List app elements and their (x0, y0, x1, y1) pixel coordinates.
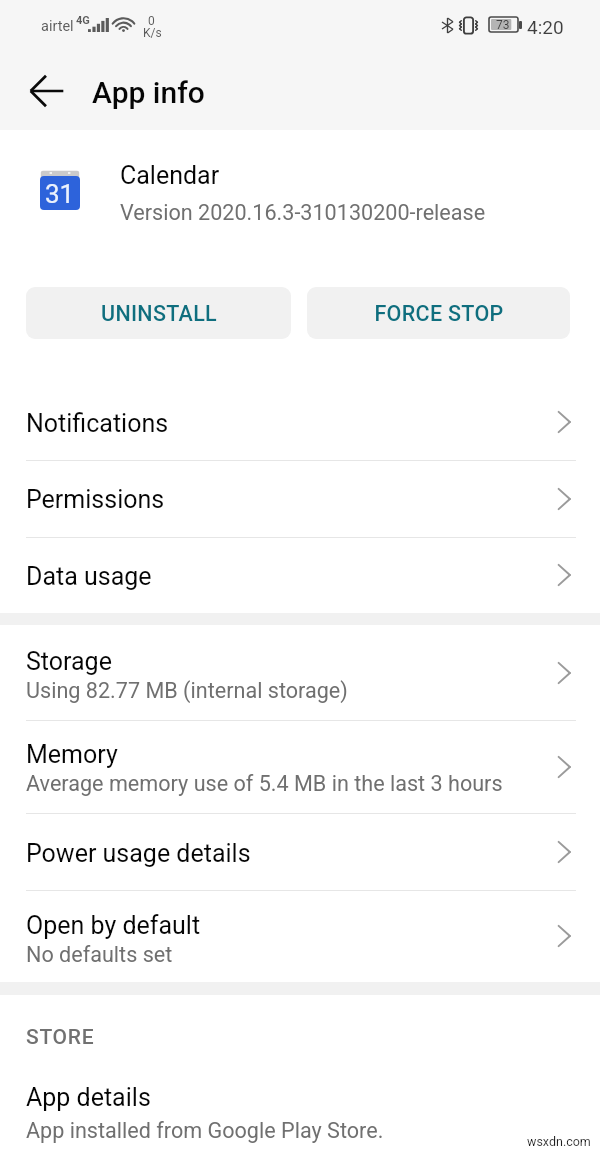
staticText: UNINSTALL (101, 301, 217, 326)
button[interactable]: Storage (0, 625, 600, 720)
staticText: 4G (76, 14, 90, 27)
staticText: App info (92, 75, 205, 110)
staticText: K/s (143, 26, 162, 40)
staticText: wsxdn.com (527, 1134, 591, 1149)
button[interactable]: Power usage details (0, 813, 600, 890)
staticText: Memory (26, 740, 118, 769)
button[interactable]: Data usage (0, 537, 600, 613)
staticText: Notifications (26, 409, 169, 438)
staticText: STORE (26, 1025, 95, 1050)
button[interactable]: Back (23, 67, 71, 115)
button[interactable]: App details (0, 1066, 600, 1152)
staticText: Permissions (26, 485, 165, 514)
button[interactable]: Memory (0, 720, 600, 813)
staticText: airtel (41, 18, 74, 35)
staticText: Calendar (120, 161, 220, 190)
button[interactable]: Open by default (0, 890, 600, 982)
staticText: FORCE STOP (374, 301, 504, 326)
staticText: Average memory use of 5.4 MB in the last… (26, 771, 503, 796)
staticText: 31 (45, 179, 75, 209)
staticText: App details (26, 1083, 151, 1112)
staticText: 0 (148, 14, 155, 28)
staticText: 73 (496, 18, 510, 32)
staticText: Version 2020.16.3-310130200-release (120, 200, 486, 225)
staticText: Open by default (26, 911, 201, 940)
button[interactable]: Notifications (0, 384, 600, 460)
staticText: Storage (26, 647, 112, 676)
staticText: Data usage (26, 562, 152, 591)
button[interactable]: FORCE STOP (307, 287, 570, 339)
staticText: Using 82.77 MB (internal storage) (26, 678, 348, 703)
button[interactable]: Permissions (0, 460, 600, 537)
button[interactable]: UNINSTALL (26, 287, 291, 339)
staticText: No defaults set (26, 942, 173, 967)
staticText: Power usage details (26, 839, 251, 868)
staticText: App installed from Google Play Store. (26, 1118, 384, 1143)
staticText: 4:20 (527, 16, 564, 38)
